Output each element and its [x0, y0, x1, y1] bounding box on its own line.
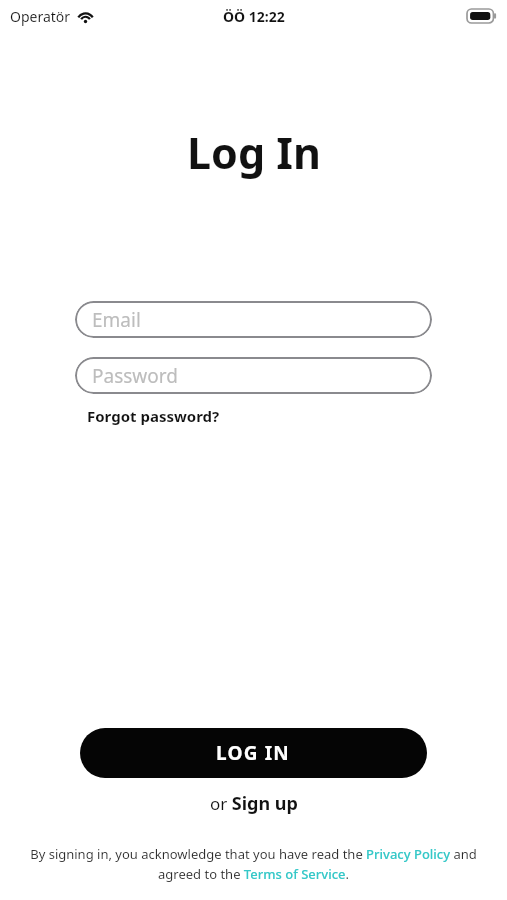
button[interactable]: or Sign up [200, 789, 308, 818]
staticText: LOG IN [216, 740, 291, 766]
button[interactable]: Forgot password? [75, 404, 232, 428]
staticText: Password [92, 363, 178, 389]
staticText: Email [92, 307, 141, 333]
button[interactable]: Password [75, 357, 432, 394]
staticText: By signing in, you acknowledge that you … [30, 845, 477, 883]
staticText: Log In [187, 123, 321, 182]
staticText: Operatör [10, 7, 71, 26]
other: Battery full [467, 9, 497, 23]
staticText: or Sign up [210, 791, 298, 816]
button[interactable]: Email [75, 301, 432, 338]
button[interactable]: LOG IN [80, 728, 427, 778]
staticText: Forgot password? [87, 406, 220, 426]
staticText: ÖÖ 12:22 [223, 7, 285, 26]
